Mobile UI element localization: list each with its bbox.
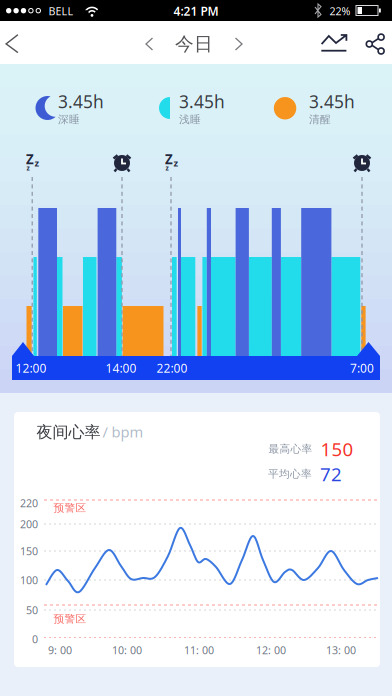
staticText: 72 — [320, 462, 342, 486]
staticText: 浅睡 — [179, 113, 201, 126]
staticText: 预警区 — [53, 501, 86, 514]
staticText: 夜间心率 — [36, 422, 100, 442]
staticText: z — [26, 164, 29, 172]
staticText: 深睡 — [58, 113, 80, 126]
staticText: 150 — [20, 544, 38, 558]
staticText: 14:00 — [105, 360, 136, 376]
staticText: 13: 00 — [326, 643, 356, 657]
staticText: 10: 00 — [112, 643, 142, 657]
button[interactable]: Trends — [317, 28, 351, 58]
staticText: 3.45h — [58, 90, 104, 113]
staticText: 预警区 — [53, 612, 86, 625]
staticText: 7:00 — [350, 360, 374, 376]
staticText: 3.45h — [309, 90, 355, 113]
staticText: 0 — [32, 632, 38, 646]
staticText: BELL — [48, 4, 73, 18]
staticText: 50 — [26, 603, 38, 617]
staticText: 22:00 — [156, 360, 187, 376]
staticText: 12:00 — [15, 360, 46, 376]
staticText: 12: 00 — [256, 643, 286, 657]
staticText: 100 — [20, 573, 38, 587]
staticText: Z — [26, 150, 34, 168]
staticText: 220 — [20, 496, 38, 510]
staticText: 3.45h — [179, 90, 225, 113]
staticText: 平均心率 — [268, 467, 312, 480]
staticText: 200 — [20, 517, 38, 531]
staticText: 今日 — [175, 32, 213, 55]
button[interactable]: Next day — [227, 30, 251, 58]
staticText: z — [34, 157, 39, 169]
staticText: z — [165, 164, 168, 172]
staticText: z — [173, 157, 178, 169]
staticText: 清醒 — [309, 113, 331, 126]
staticText: 9: 00 — [48, 643, 72, 657]
staticText: 150 — [320, 437, 353, 461]
staticText: 11: 00 — [184, 643, 214, 657]
staticText: / bpm — [102, 422, 143, 441]
button[interactable]: Previous day — [137, 30, 161, 58]
staticText: 4:21 PM — [173, 3, 218, 19]
staticText: 最高心率 — [268, 442, 312, 455]
staticText: 22% — [329, 4, 350, 18]
button[interactable]: Back — [0, 26, 24, 62]
staticText: Z — [165, 150, 173, 168]
button[interactable]: Share — [361, 29, 391, 59]
